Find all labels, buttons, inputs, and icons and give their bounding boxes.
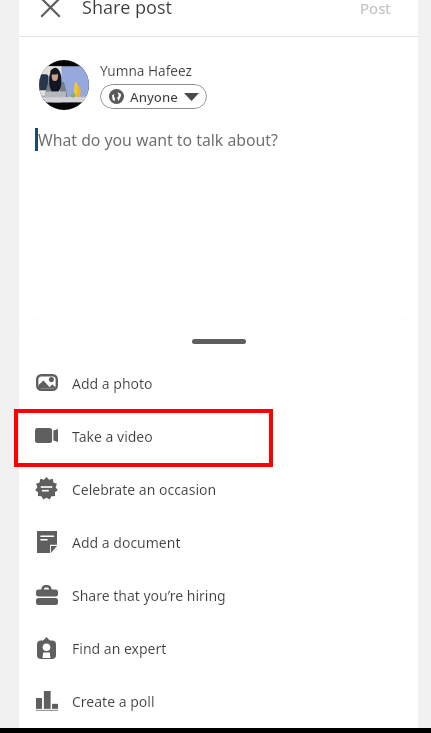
button[interactable]: Share that you’re hiring [19, 568, 418, 621]
button[interactable]: Post [350, 0, 401, 26]
button[interactable]: Close [30, 0, 70, 26]
staticText: Find an expert [72, 639, 167, 658]
button[interactable]: Create a poll [19, 674, 418, 727]
button[interactable]: Celebrate an occasion [19, 462, 418, 515]
staticText: Celebrate an occasion [72, 480, 217, 499]
button[interactable]: Anyone [100, 84, 207, 109]
staticText: Post [360, 0, 391, 18]
staticText: Share that you’re hiring [72, 586, 226, 605]
button[interactable]: Take a video [19, 409, 418, 462]
button[interactable]: Profile photo [39, 60, 89, 110]
button[interactable]: Add a document [19, 515, 418, 568]
staticText: Add a photo [72, 374, 153, 393]
staticText: Take a video [72, 427, 153, 446]
staticText: Yumna Hafeez [100, 61, 192, 80]
button[interactable]: Add a photo [19, 356, 418, 409]
staticText: Add a document [72, 533, 181, 552]
staticText: Create a poll [72, 692, 155, 711]
button[interactable]: Find an expert [19, 621, 418, 674]
staticText: What do you want to talk about? [38, 129, 278, 151]
staticText: Anyone [130, 88, 178, 106]
staticText: Share post [82, 0, 173, 20]
